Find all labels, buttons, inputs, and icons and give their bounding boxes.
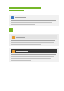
button[interactable]: Note (9, 48, 59, 62)
other: Note (12, 50, 15, 53)
button[interactable] (9, 7, 59, 11)
other: Note (12, 36, 15, 39)
other: Note (11, 16, 14, 19)
button[interactable]: Note (9, 15, 59, 26)
button[interactable]: Note (9, 34, 59, 46)
